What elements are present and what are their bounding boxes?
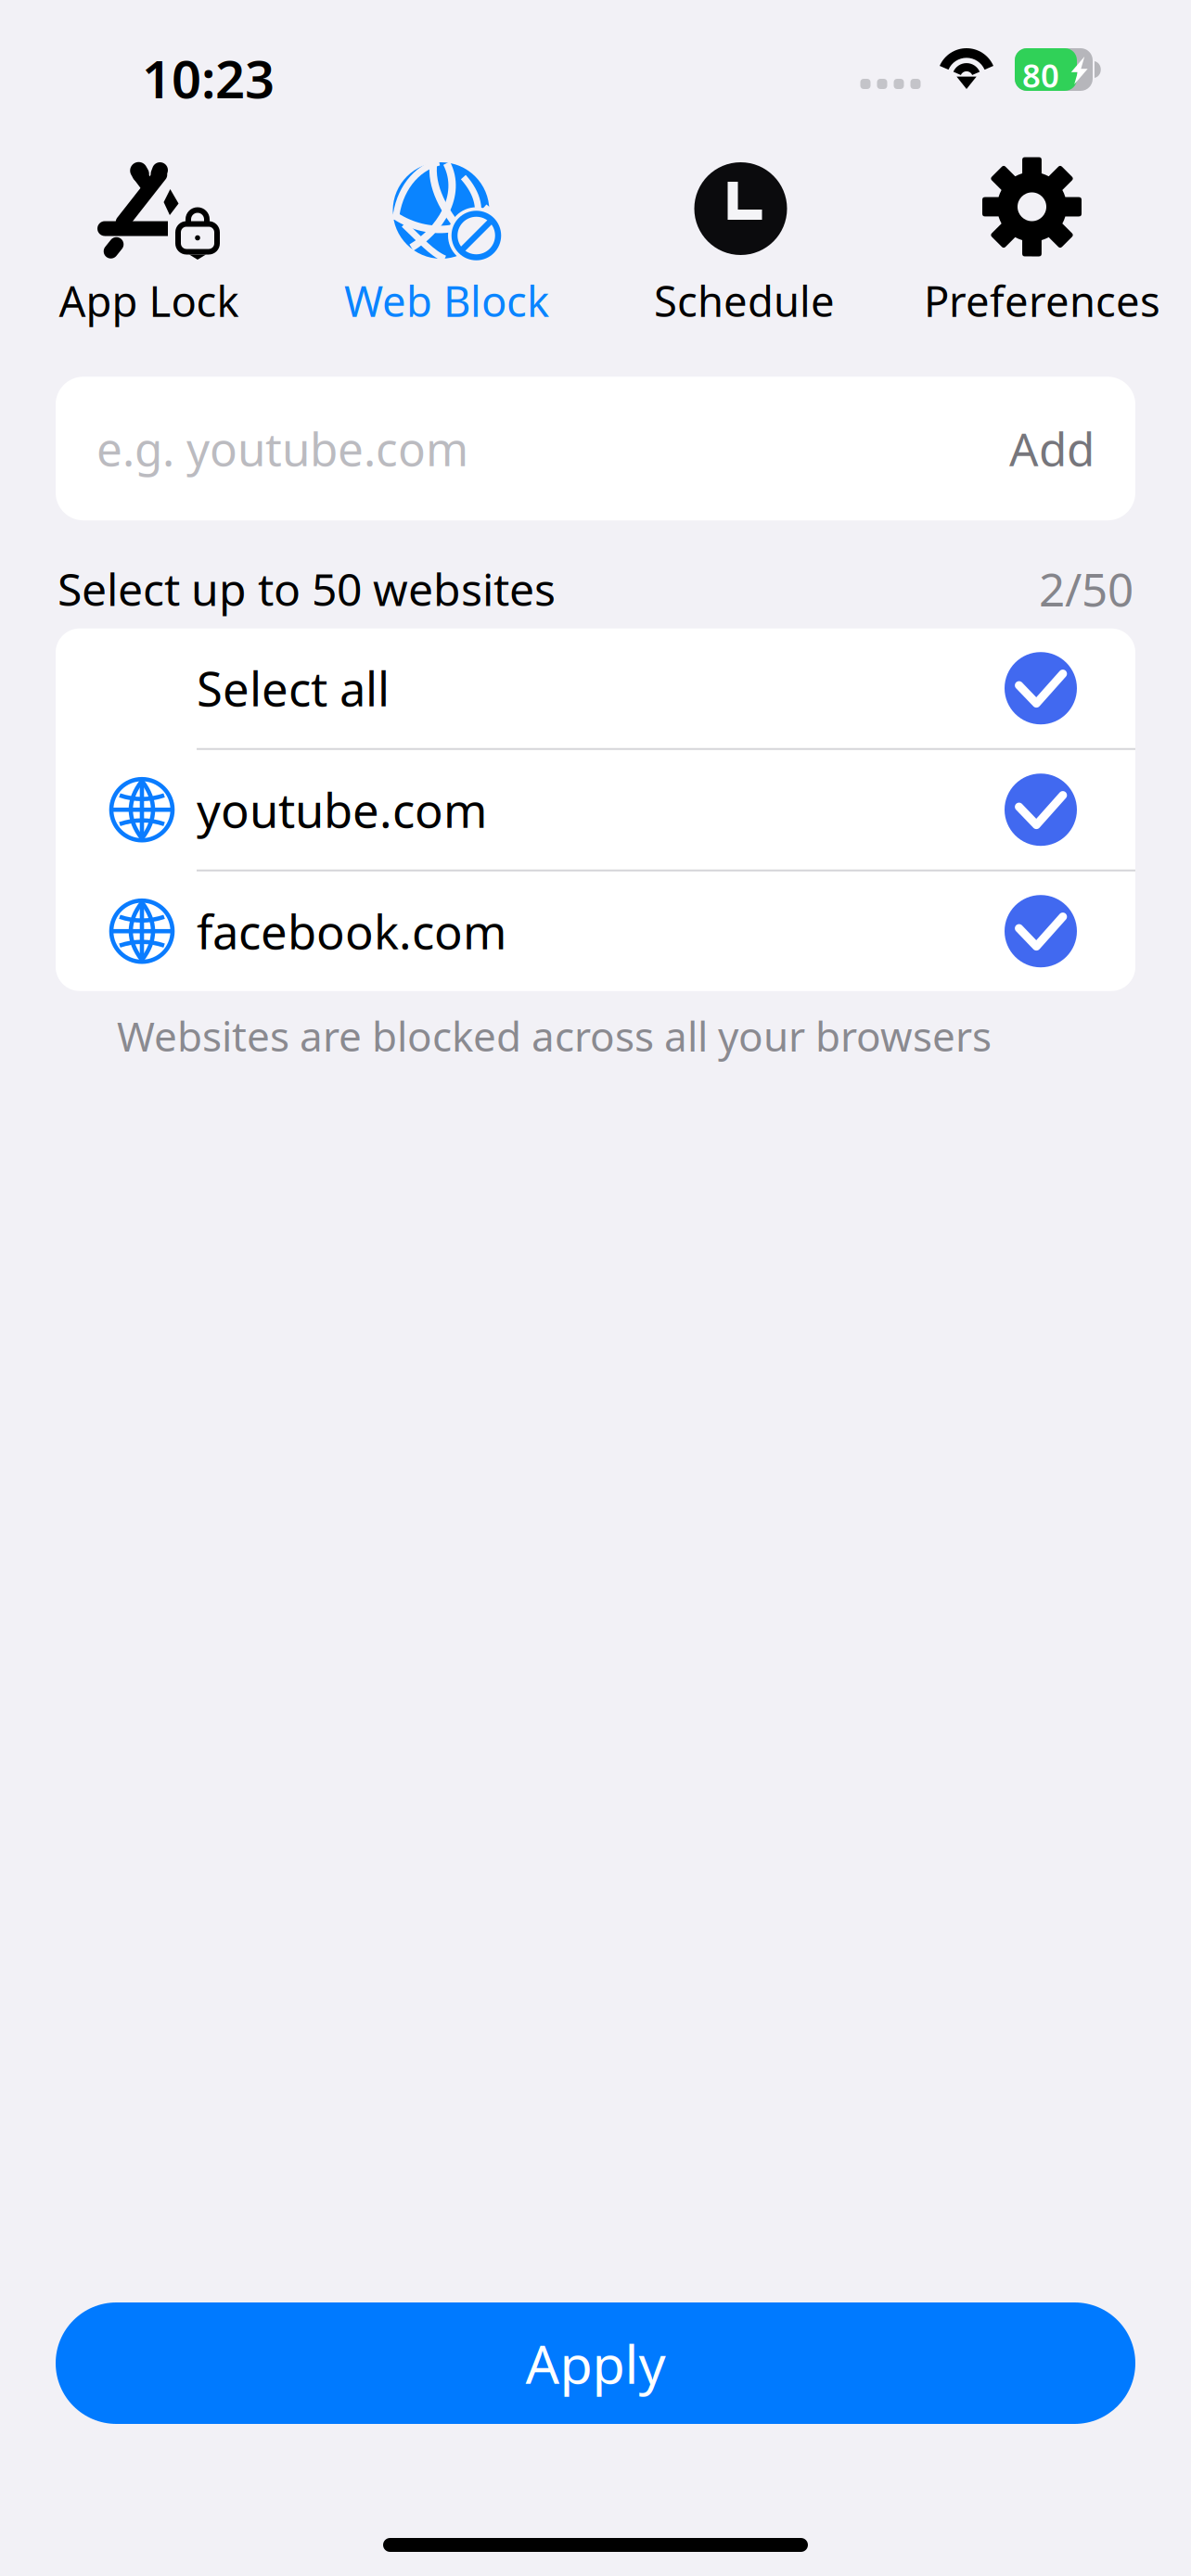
staticText: Select all: [197, 657, 390, 719]
staticText: Schedule: [654, 273, 835, 328]
staticText: youtube.com: [197, 779, 487, 841]
staticText: e.g. youtube.com: [96, 418, 468, 479]
button[interactable]: Schedule: [595, 162, 893, 328]
button[interactable]: Preferences: [893, 162, 1191, 328]
staticText: Apply: [525, 2328, 666, 2398]
staticText: App Lock: [59, 273, 239, 328]
staticText: facebook.com: [197, 900, 506, 962]
button[interactable]: e.g. youtube.com: [56, 377, 1135, 520]
button[interactable]: facebook.com: [56, 871, 1135, 991]
staticText: 80: [1022, 54, 1059, 96]
staticText: Add: [1009, 418, 1095, 479]
staticText: 10:23: [142, 44, 275, 113]
button[interactable]: Select all: [56, 628, 1135, 748]
staticText: Web Block: [344, 273, 549, 328]
button[interactable]: Web Block: [298, 162, 595, 328]
staticText: Select up to 50 websites: [58, 559, 556, 618]
button[interactable]: Apply: [56, 2302, 1135, 2424]
button[interactable]: App Lock: [0, 162, 298, 328]
staticText: 2/50: [1039, 558, 1133, 619]
staticText: Websites are blocked across all your bro…: [117, 1009, 992, 1063]
staticText: Preferences: [924, 273, 1160, 328]
button[interactable]: youtube.com: [56, 750, 1135, 870]
